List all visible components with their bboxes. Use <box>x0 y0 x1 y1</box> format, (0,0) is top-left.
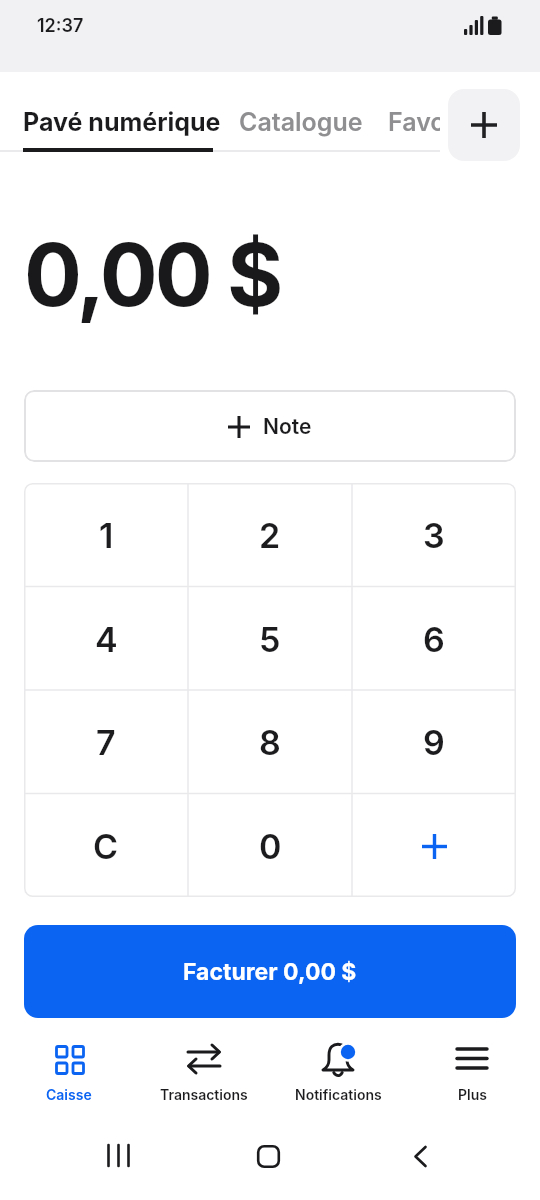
staticText: 12:37 <box>37 15 84 37</box>
staticText: Note <box>263 414 312 439</box>
staticText: 3 <box>423 515 445 556</box>
button[interactable]: 9 <box>352 690 516 794</box>
staticText: 4 <box>95 619 118 660</box>
button[interactable]: 4 <box>24 587 188 691</box>
staticText: Caisse <box>46 1086 92 1103</box>
button[interactable] <box>414 1146 427 1167</box>
button[interactable] <box>448 89 520 161</box>
button[interactable]: C <box>24 794 188 898</box>
staticText: Facturer 0,00 $ <box>183 958 357 986</box>
staticText: Transactions <box>160 1086 248 1103</box>
button[interactable]: Notifications <box>278 1038 398 1118</box>
button[interactable]: 0 <box>188 794 352 898</box>
staticText: 5 <box>259 619 281 660</box>
staticText: C <box>93 826 119 867</box>
staticText: 8 <box>259 722 281 763</box>
staticText: 2 <box>259 515 281 556</box>
staticText: 0 <box>259 826 282 867</box>
button[interactable]: Caisse <box>9 1038 129 1118</box>
button[interactable]: 8 <box>188 690 352 794</box>
staticText: 1 <box>99 515 114 556</box>
button[interactable]: 6 <box>352 587 516 691</box>
button[interactable] <box>257 1145 280 1168</box>
button[interactable]: Pavé numérique <box>23 107 221 137</box>
button[interactable] <box>107 1145 131 1167</box>
button[interactable]: 5 <box>188 587 352 691</box>
button[interactable]: 2 <box>188 483 352 587</box>
staticText: 0,00 $ <box>24 223 281 327</box>
staticText: 9 <box>423 722 445 763</box>
staticText: Catalogue <box>239 107 363 137</box>
button[interactable]: Note <box>24 390 516 462</box>
button[interactable]: Catalogue <box>239 107 363 137</box>
staticText: Pavé numérique <box>23 107 221 137</box>
button[interactable]: Facturer 0,00 $ <box>24 925 516 1018</box>
button[interactable]: Plus <box>412 1038 532 1118</box>
staticText: Notifications <box>295 1086 382 1103</box>
staticText: Plus <box>458 1086 487 1103</box>
button[interactable]: 3 <box>352 483 516 587</box>
button[interactable]: 7 <box>24 690 188 794</box>
button[interactable] <box>352 794 516 898</box>
button[interactable]: Transactions <box>144 1038 264 1118</box>
button[interactable]: Favoris <box>388 107 477 137</box>
button[interactable]: 1 <box>24 483 188 587</box>
staticText: 6 <box>423 619 445 660</box>
staticText: 7 <box>96 722 116 763</box>
staticText: Favoris <box>388 107 477 137</box>
